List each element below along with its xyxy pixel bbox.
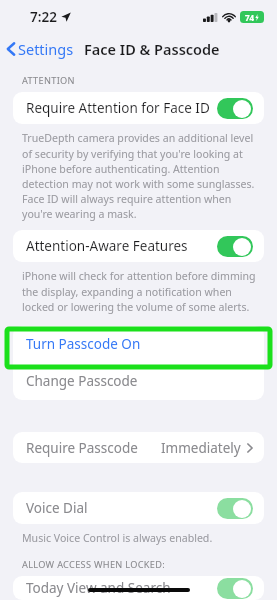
staticText: Settings	[18, 39, 74, 59]
button[interactable]: Voice Dial	[13, 492, 264, 524]
staticText: Today View and Search	[26, 579, 171, 597]
staticText: Music Voice Control is always enabled.	[22, 531, 213, 545]
staticText: 74	[245, 12, 255, 23]
staticText: TrueDepth camera provides an additional …	[22, 131, 263, 221]
button[interactable]: Settings	[6, 39, 74, 59]
staticText: Attention-Aware Features	[26, 237, 188, 255]
button[interactable]: Today View and Search	[13, 576, 264, 600]
staticText: Face ID & Passcode	[84, 39, 220, 59]
button[interactable]: Turn Passcode On	[13, 326, 264, 362]
staticText: ALLOW ACCESS WHEN LOCKED:	[22, 558, 165, 571]
staticText: ATTENTION	[22, 74, 75, 87]
button[interactable]: Require Attention for Face ID toggle, on	[217, 98, 253, 119]
staticText: Turn Passcode On	[26, 335, 141, 353]
button[interactable]: Attention-Aware Features	[13, 230, 264, 262]
staticText: Require Passcode	[26, 439, 138, 457]
button[interactable]: Voice Dial toggle, on	[217, 498, 253, 519]
button[interactable]: Require Passcode	[13, 432, 264, 463]
button[interactable]: Today View and Search toggle, on	[217, 578, 253, 599]
staticText: Voice Dial	[26, 499, 88, 517]
staticText: iPhone will check for attention before d…	[22, 269, 263, 314]
button[interactable]: Change Passcode	[13, 362, 264, 400]
staticText: 7:22	[30, 8, 57, 26]
staticText: Immediately	[161, 439, 241, 457]
staticText: Require Attention for Face ID	[26, 99, 210, 117]
button[interactable]: Attention-Aware Features toggle, on	[217, 236, 253, 257]
staticText: Change Passcode	[26, 372, 138, 390]
button[interactable]: Require Attention for Face ID	[13, 92, 264, 124]
